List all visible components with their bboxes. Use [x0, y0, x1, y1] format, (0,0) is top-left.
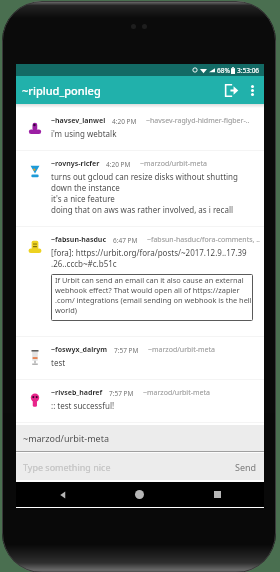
staticText: 4:20 PM	[112, 117, 137, 126]
staticText: i'm using webtalk	[51, 128, 117, 139]
staticText: ~havsev_lanwel	[51, 116, 106, 126]
button[interactable]: ~fabsun-hasduc	[16, 227, 264, 336]
button[interactable]: ~marzod/urbit-meta	[16, 425, 264, 451]
staticText: 3:53:06	[237, 66, 260, 75]
staticText: 7:57 PM	[114, 346, 139, 355]
button[interactable]: Log out	[219, 78, 243, 102]
staticText: Type something nice	[23, 461, 228, 473]
staticText: ~rivseb_hadref	[51, 388, 103, 398]
staticText: down the instance	[51, 182, 120, 193]
staticText: 4:20 PM	[106, 160, 131, 169]
staticText: 7:57 PM	[109, 389, 134, 398]
staticText: turns out gcloud can resize disks withou…	[51, 171, 238, 182]
button[interactable]: Home	[127, 482, 152, 507]
staticText: it's a nice feature	[51, 193, 115, 204]
staticText: [fora]: https://urbit.org/fora/posts/~20…	[51, 247, 247, 258]
staticText: 68%	[217, 66, 230, 75]
staticText: ~havsev-raglyd-hidmer-figber-..	[146, 116, 250, 126]
button[interactable]: ~havsev_lanwel	[16, 104, 264, 150]
button[interactable]: Back	[50, 482, 75, 507]
staticText: ~rovnys-ricfer	[51, 159, 100, 169]
button[interactable]: ~rivseb_hadref	[16, 380, 264, 422]
staticText: 6:47 PM	[113, 236, 138, 245]
button[interactable]: ~foswyx_dalrym	[16, 337, 264, 379]
staticText: :: test successful!	[51, 400, 115, 411]
button[interactable]: Recents	[205, 482, 230, 507]
staticText: ~fabsun-hasduc/fora-comments, ..	[147, 235, 260, 245]
staticText: test	[51, 357, 66, 368]
button[interactable]: More options	[243, 81, 261, 99]
staticText: ~marzod/urbit-meta	[23, 432, 109, 444]
staticText: If Urbit can send an email can it also c…	[55, 275, 251, 315]
staticText: ~marzod/urbit-meta	[143, 388, 210, 398]
staticText: ~marzod/urbit-meta	[148, 345, 215, 355]
staticText: ~fabsun-hasduc	[51, 235, 107, 245]
staticText: doing that on aws was rather involved, a…	[51, 204, 234, 215]
staticText: Send	[235, 461, 257, 473]
staticText: .26..cccb~#c.b51c	[51, 258, 117, 269]
button[interactable]: ~rovnys-ricfer	[16, 151, 264, 226]
button[interactable]: Send	[228, 457, 264, 477]
staticText: ~riplud_ponleg	[22, 83, 101, 98]
staticText: ~marzod/urbit-meta	[140, 159, 207, 169]
staticText: ~foswyx_dalrym	[51, 345, 108, 355]
